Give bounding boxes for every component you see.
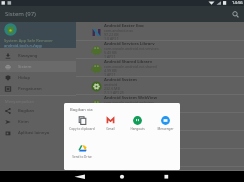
staticText: System App Safe Remover	[4, 38, 54, 43]
staticText: Sistem	[18, 64, 32, 70]
button[interactable]: Android Shared Library	[76, 59, 244, 77]
staticText: 7.1.1 API 25	[104, 90, 124, 94]
button[interactable]: Basic Daydreams	[76, 113, 244, 131]
staticText: Pengaturan	[18, 86, 42, 92]
staticText: 7.1.1 API 25	[104, 126, 124, 130]
staticText: Bagikan via	[70, 107, 93, 113]
staticText: android-tools.ru/app	[4, 43, 42, 48]
button[interactable]: Bluetooth MIDI Service	[76, 131, 244, 149]
staticText: Android Services Library	[104, 41, 155, 45]
button[interactable]: Kirim	[0, 116, 76, 127]
staticText: Hidup	[18, 75, 31, 81]
staticText: 5.43 KB	[104, 50, 117, 54]
staticText: com.android.bookmarkprovider	[104, 172, 158, 176]
staticText: Android Shared Library	[104, 59, 153, 63]
staticText: Menyampaikan	[5, 99, 34, 104]
button[interactable]: Gmail	[96, 115, 124, 131]
staticText: 28.0 KB	[104, 122, 117, 126]
staticText: Copy to clipboard	[69, 127, 95, 131]
staticText: com.android.dreams.basic	[104, 118, 149, 122]
staticText: Android Easter Egg	[104, 23, 144, 27]
button[interactable]: Bookmark Provider	[76, 167, 244, 171]
staticText: Hangouts	[130, 127, 145, 131]
staticText: com.google.android.ext.shared	[104, 64, 157, 68]
button[interactable]: Search	[226, 6, 244, 22]
staticText: Send to Drive	[72, 155, 92, 159]
button[interactable]: Riwayang	[0, 50, 76, 61]
button[interactable]: Android System	[76, 77, 244, 95]
staticText: com.android.egg	[104, 28, 133, 32]
staticText: Riwayang	[18, 53, 38, 59]
button[interactable]: Bluetooth Share	[76, 149, 244, 167]
button[interactable]: Bagikan	[0, 105, 76, 116]
button[interactable]: Android System WebView	[76, 95, 244, 113]
staticText: Messenger	[157, 127, 174, 131]
staticText: Gmail	[106, 127, 115, 131]
staticText: Android System WebView	[104, 95, 158, 99]
button[interactable]: Pengaturan	[0, 83, 76, 94]
staticText: 1 API 1	[104, 72, 116, 76]
button[interactable]: Send to Drive	[68, 143, 96, 159]
staticText: Aplikasi lainnya	[18, 130, 50, 136]
staticText: com.google.android.ext.services	[104, 46, 159, 50]
button[interactable]: Android Services Library	[76, 41, 244, 59]
button[interactable]: Sistem	[0, 61, 76, 72]
staticText: Bagikan	[18, 108, 35, 114]
staticText: 14:56	[232, 0, 243, 6]
staticText: Kirim	[18, 119, 29, 125]
button[interactable]: Messenger	[151, 115, 179, 131]
staticText: 1.0 API 1	[104, 36, 119, 40]
staticText: Bookmark Provider	[104, 167, 145, 171]
button[interactable]: Hangouts	[123, 115, 151, 131]
button[interactable]: Android Easter Egg	[76, 23, 244, 41]
staticText: 97.22 KB	[104, 32, 119, 36]
staticText: android	[104, 82, 118, 86]
button[interactable]: Hidup	[0, 72, 76, 83]
button[interactable]: Copy to clipboard	[68, 115, 96, 131]
staticText: 232.6 MB	[104, 86, 120, 90]
button[interactable]: Aplikasi lainnya	[0, 127, 76, 138]
staticText: Sistem (97)	[5, 10, 36, 18]
staticText: Basic Daydreams	[104, 113, 140, 117]
staticText: com.google.android.webview	[104, 100, 154, 104]
staticText: Android System	[104, 77, 137, 81]
staticText: 1 API 1	[104, 54, 116, 58]
staticText: 4.99 KB	[104, 68, 117, 72]
